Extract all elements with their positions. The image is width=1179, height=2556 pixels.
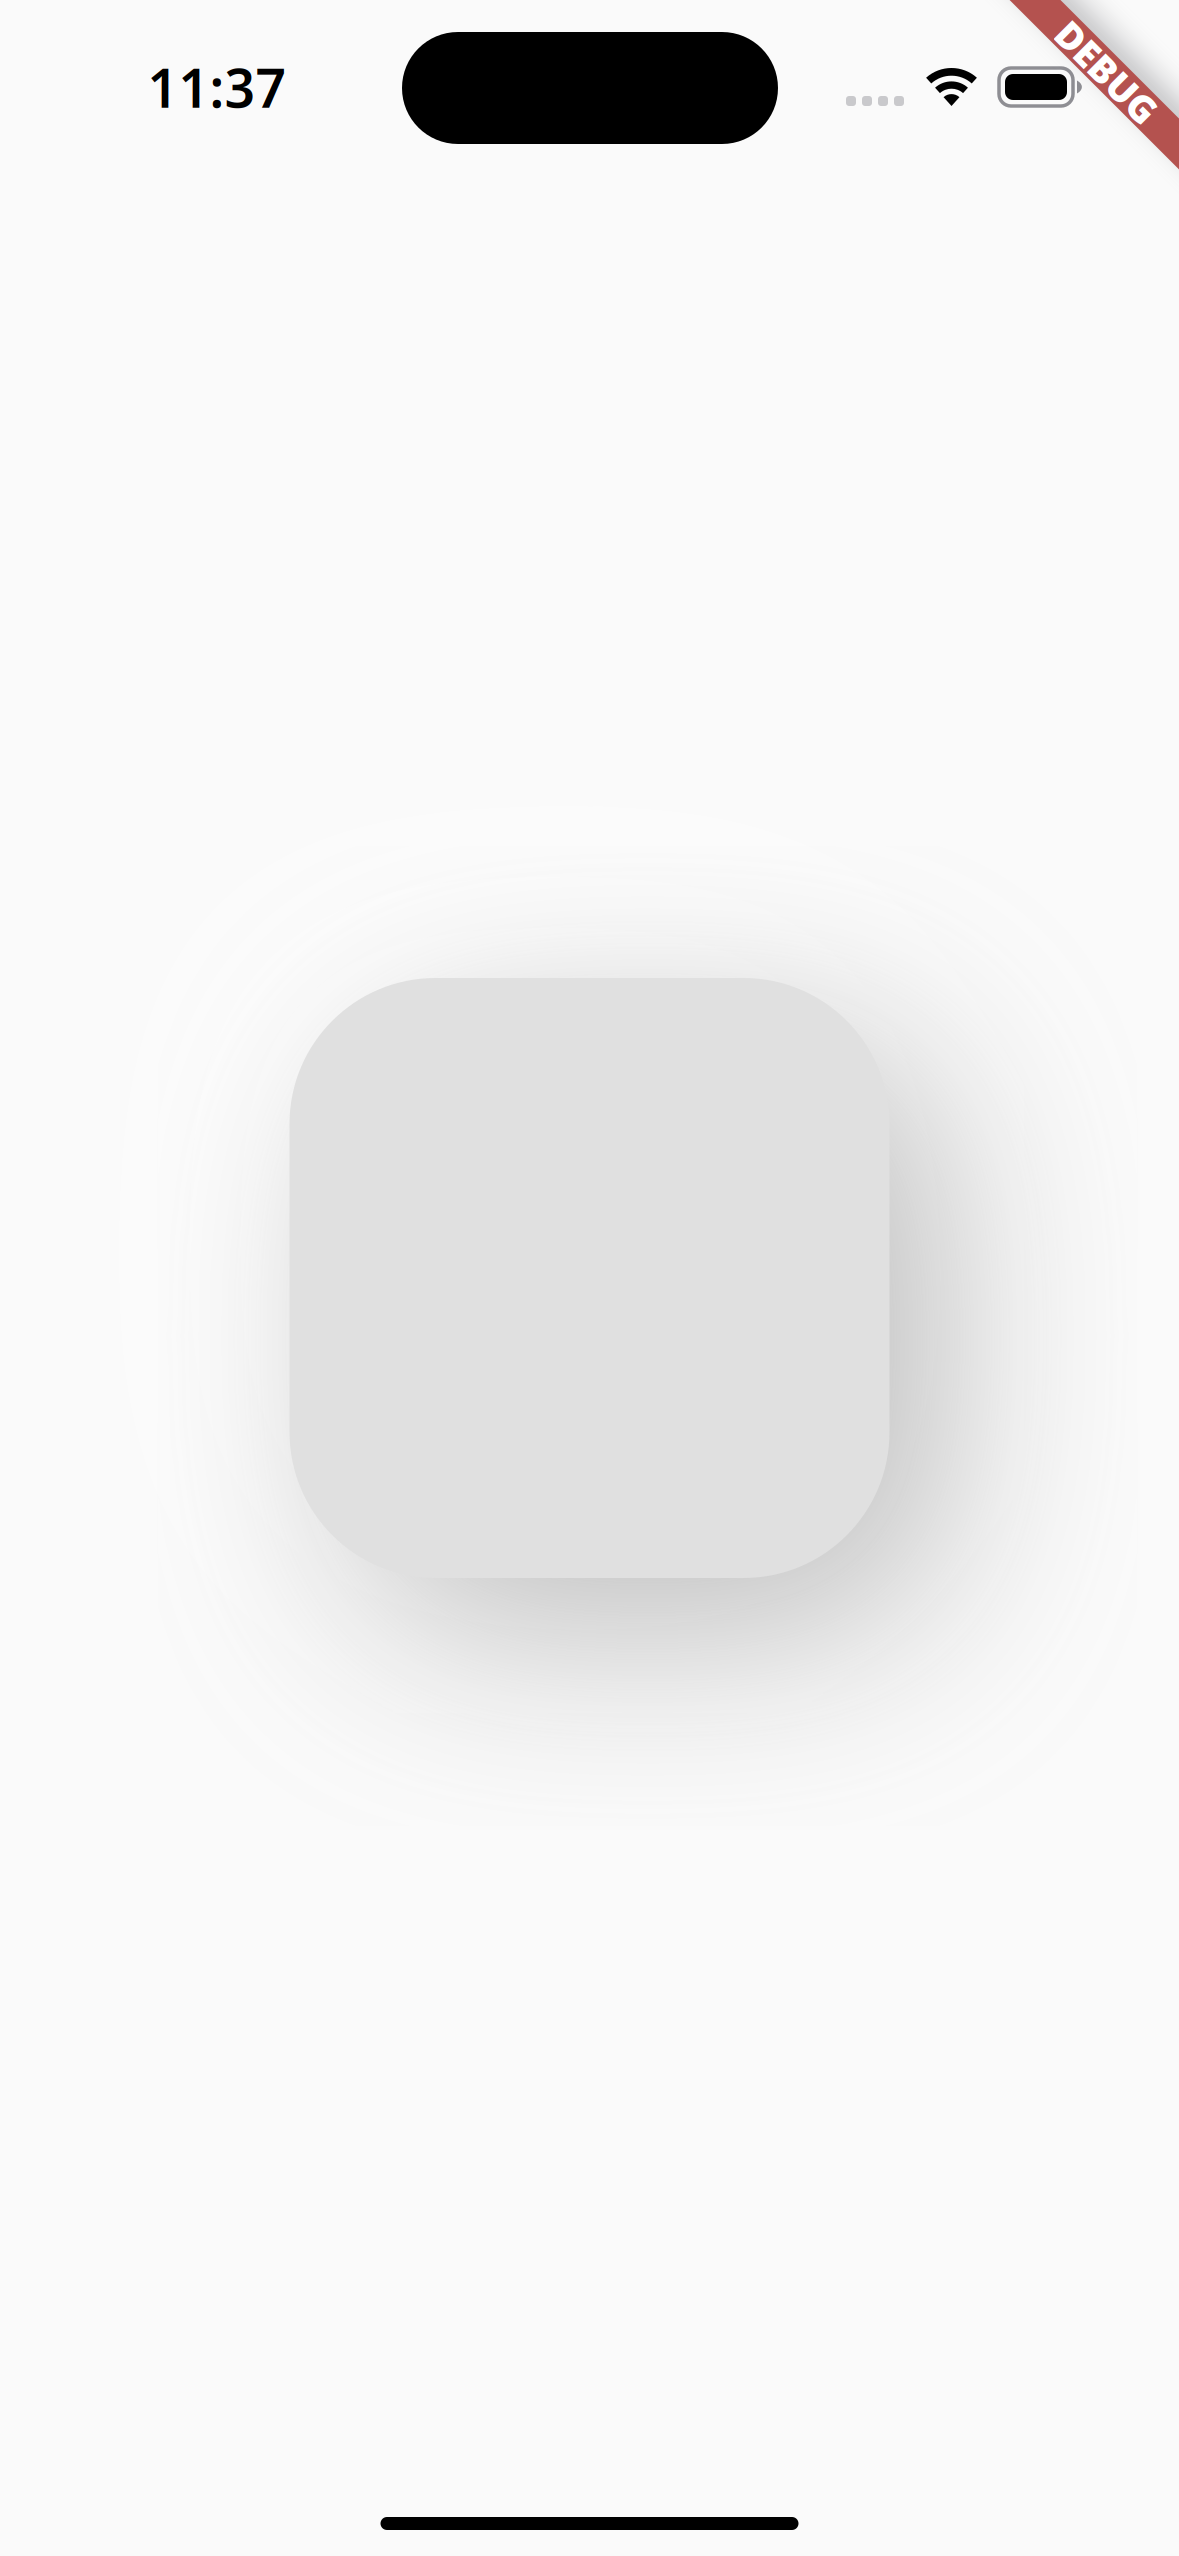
staticText: 11:37 (147, 52, 286, 122)
staticText: DEBUG (1043, 47, 1171, 97)
button[interactable]: Card (289, 978, 889, 1578)
